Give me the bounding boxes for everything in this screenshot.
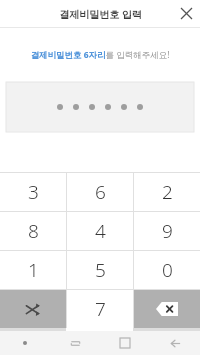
staticText: 결제비밀번호 6자리를 입력해주세요!: [30, 49, 170, 61]
button[interactable]: 6: [67, 173, 133, 211]
staticText: 2: [162, 179, 173, 205]
button[interactable]: Recent apps: [100, 331, 150, 355]
button[interactable]: Shuffle keypad: [0, 290, 66, 328]
staticText: 0: [162, 257, 173, 283]
button[interactable]: 5: [67, 251, 133, 289]
staticText: 1: [28, 257, 39, 283]
staticText: 6: [95, 179, 106, 205]
button[interactable]: Close: [173, 0, 200, 27]
button[interactable]: 4: [67, 212, 133, 250]
staticText: 4: [95, 218, 106, 244]
button[interactable]: 3: [0, 173, 66, 211]
button[interactable]: Menu dot: [0, 331, 50, 355]
staticText: 3: [28, 179, 39, 205]
button[interactable]: Back: [150, 331, 200, 355]
staticText: 7: [95, 296, 106, 322]
button[interactable]: 0: [134, 251, 200, 289]
button[interactable]: 8: [0, 212, 66, 250]
button[interactable]: Backspace: [134, 290, 200, 328]
staticText: 결제비밀번호 입력: [59, 7, 142, 21]
button[interactable]: 1: [0, 251, 66, 289]
staticText: 8: [28, 218, 39, 244]
staticText: 5: [95, 257, 106, 283]
button[interactable]: 7: [67, 290, 133, 328]
button[interactable]: 9: [134, 212, 200, 250]
staticText: 9: [162, 218, 173, 244]
button[interactable]: 2: [134, 173, 200, 211]
button[interactable]: Switch keyboard: [50, 331, 100, 355]
